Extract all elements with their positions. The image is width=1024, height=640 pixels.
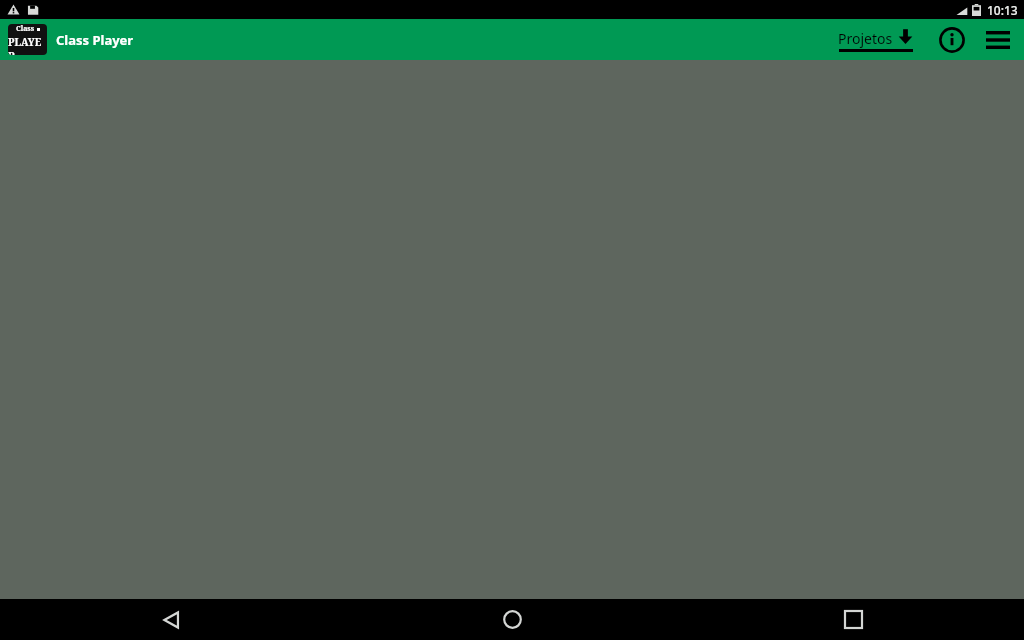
staticText: 10:13 — [987, 2, 1018, 18]
button[interactable]: Information — [932, 20, 972, 60]
staticText: PLAYER — [8, 35, 47, 55]
button[interactable]: Back — [0, 599, 342, 640]
button[interactable]: Home — [342, 599, 683, 640]
staticText: Projetos — [838, 29, 893, 48]
staticText: Class Player — [56, 31, 134, 49]
button[interactable]: Class — [0, 24, 134, 55]
button[interactable]: Menu — [978, 20, 1018, 60]
staticText: Class — [16, 24, 35, 34]
button[interactable]: Recent apps — [683, 599, 1024, 640]
button[interactable]: Projetos — [832, 25, 920, 55]
